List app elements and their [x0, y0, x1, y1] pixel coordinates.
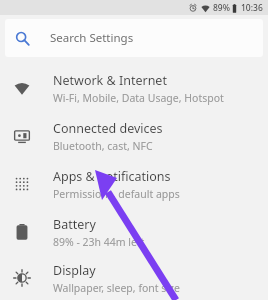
staticText: Network & Internet — [53, 72, 167, 89]
button[interactable]: Battery — [0, 208, 268, 256]
staticText: Connected devices — [53, 120, 163, 137]
staticText: 89% — [213, 2, 230, 14]
staticText: Permissions, default apps — [53, 187, 180, 201]
staticText: Wallpaper, sleep, font size — [53, 281, 180, 295]
staticText: Display — [53, 262, 96, 279]
staticText: Search Settings — [50, 30, 134, 46]
button[interactable]: Display — [0, 256, 268, 300]
button[interactable]: Connected devices — [0, 112, 268, 160]
button[interactable]: Search Settings — [5, 19, 263, 57]
staticText: Battery — [53, 216, 96, 233]
staticText: Wi-Fi, Mobile, Data Usage, Hotspot — [53, 91, 224, 105]
button[interactable]: Network & Internet — [0, 64, 268, 112]
staticText: 89% - 23h 44m left — [53, 235, 145, 249]
staticText: Bluetooth, cast, NFC — [53, 139, 153, 153]
button[interactable]: Apps & notifications — [0, 160, 268, 208]
staticText: 10:36 — [241, 2, 263, 14]
staticText: Apps & notifications — [53, 168, 171, 185]
